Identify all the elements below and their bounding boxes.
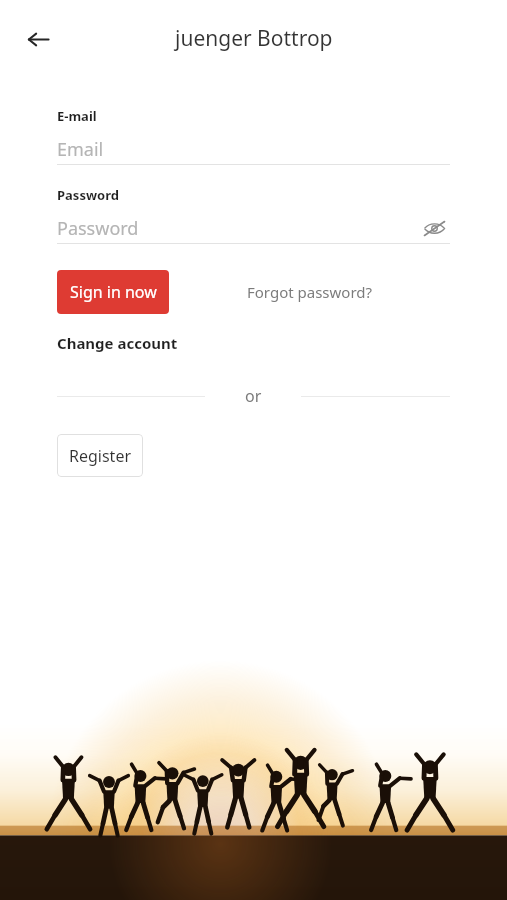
staticText: Password <box>57 186 119 204</box>
button[interactable]: Sign in now <box>57 270 169 314</box>
staticText: Forgot password? <box>247 282 373 302</box>
button[interactable]: Email <box>57 134 450 164</box>
staticText: Change account <box>57 333 178 353</box>
staticText: Password <box>57 216 139 241</box>
staticText: Email <box>57 137 104 162</box>
staticText: Register <box>69 445 132 467</box>
staticText: Sign in now <box>70 281 157 303</box>
staticText: or <box>245 385 262 407</box>
button[interactable]: Password <box>57 213 450 243</box>
button[interactable]: Forgot password? <box>169 270 450 314</box>
staticText: juenger Bottrop <box>175 24 333 53</box>
button[interactable]: Back <box>14 15 62 63</box>
button[interactable]: Register <box>57 434 143 477</box>
button[interactable]: Show password <box>418 213 450 243</box>
button[interactable]: Change account <box>57 329 178 357</box>
staticText: E-mail <box>57 107 97 125</box>
